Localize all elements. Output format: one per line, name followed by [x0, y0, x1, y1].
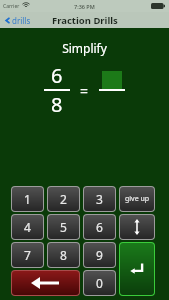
button[interactable]: drills — [3, 15, 32, 26]
staticText: 6 — [96, 219, 103, 235]
staticText: 8 — [60, 247, 67, 263]
staticText: Simplify — [62, 40, 107, 56]
staticText: Carrier — [3, 3, 20, 10]
button[interactable]: 1 — [12, 187, 43, 211]
staticText: drills — [12, 15, 31, 26]
staticText: 7 — [24, 247, 31, 263]
staticText: 8 — [51, 91, 63, 118]
button[interactable]: 3 — [84, 187, 115, 211]
staticText: give up — [125, 194, 150, 204]
staticText: 7:36 PM — [74, 3, 95, 10]
staticText: 0 — [96, 275, 103, 291]
staticText: 4 — [24, 219, 31, 235]
button[interactable]: 6 — [84, 215, 115, 239]
button[interactable]: 4 — [12, 215, 43, 239]
staticText: 5 — [60, 219, 67, 235]
button[interactable]: 7 — [12, 243, 43, 267]
button[interactable]: Switch field — [120, 215, 154, 239]
button[interactable]: 0 — [84, 271, 115, 295]
button[interactable]: 9 — [84, 243, 115, 267]
button[interactable]: 5 — [48, 215, 79, 239]
staticText: = — [80, 81, 89, 100]
button[interactable]: Backspace — [12, 271, 79, 295]
staticText: 6 — [51, 62, 63, 89]
button[interactable]: Enter — [120, 243, 154, 295]
staticText: 3 — [96, 191, 103, 207]
staticText: 9 — [96, 247, 103, 263]
staticText: 1 — [24, 191, 31, 207]
staticText: Fraction Drills — [52, 14, 118, 27]
button[interactable]: 2 — [48, 187, 79, 211]
button[interactable]: 8 — [48, 243, 79, 267]
staticText: 2 — [60, 191, 67, 207]
button[interactable]: Give up — [120, 187, 154, 211]
